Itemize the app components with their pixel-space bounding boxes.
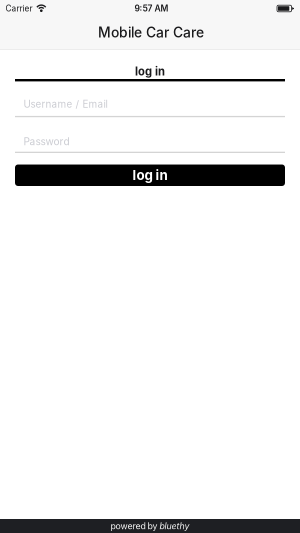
button[interactable]: Username / Email (15, 81, 285, 117)
button[interactable]: Password (15, 117, 285, 153)
staticText: 9:57 AM (134, 3, 168, 14)
staticText: Carrier (5, 3, 32, 13)
staticText: Username / Email (23, 98, 107, 110)
staticText: bluethy (159, 521, 189, 531)
staticText: Password (23, 135, 69, 148)
staticText: powered by (110, 521, 159, 531)
staticText: Mobile Car Care (98, 24, 204, 41)
button[interactable]: log in (15, 164, 285, 186)
staticText: log in (135, 65, 165, 78)
staticText: log in (132, 167, 167, 183)
